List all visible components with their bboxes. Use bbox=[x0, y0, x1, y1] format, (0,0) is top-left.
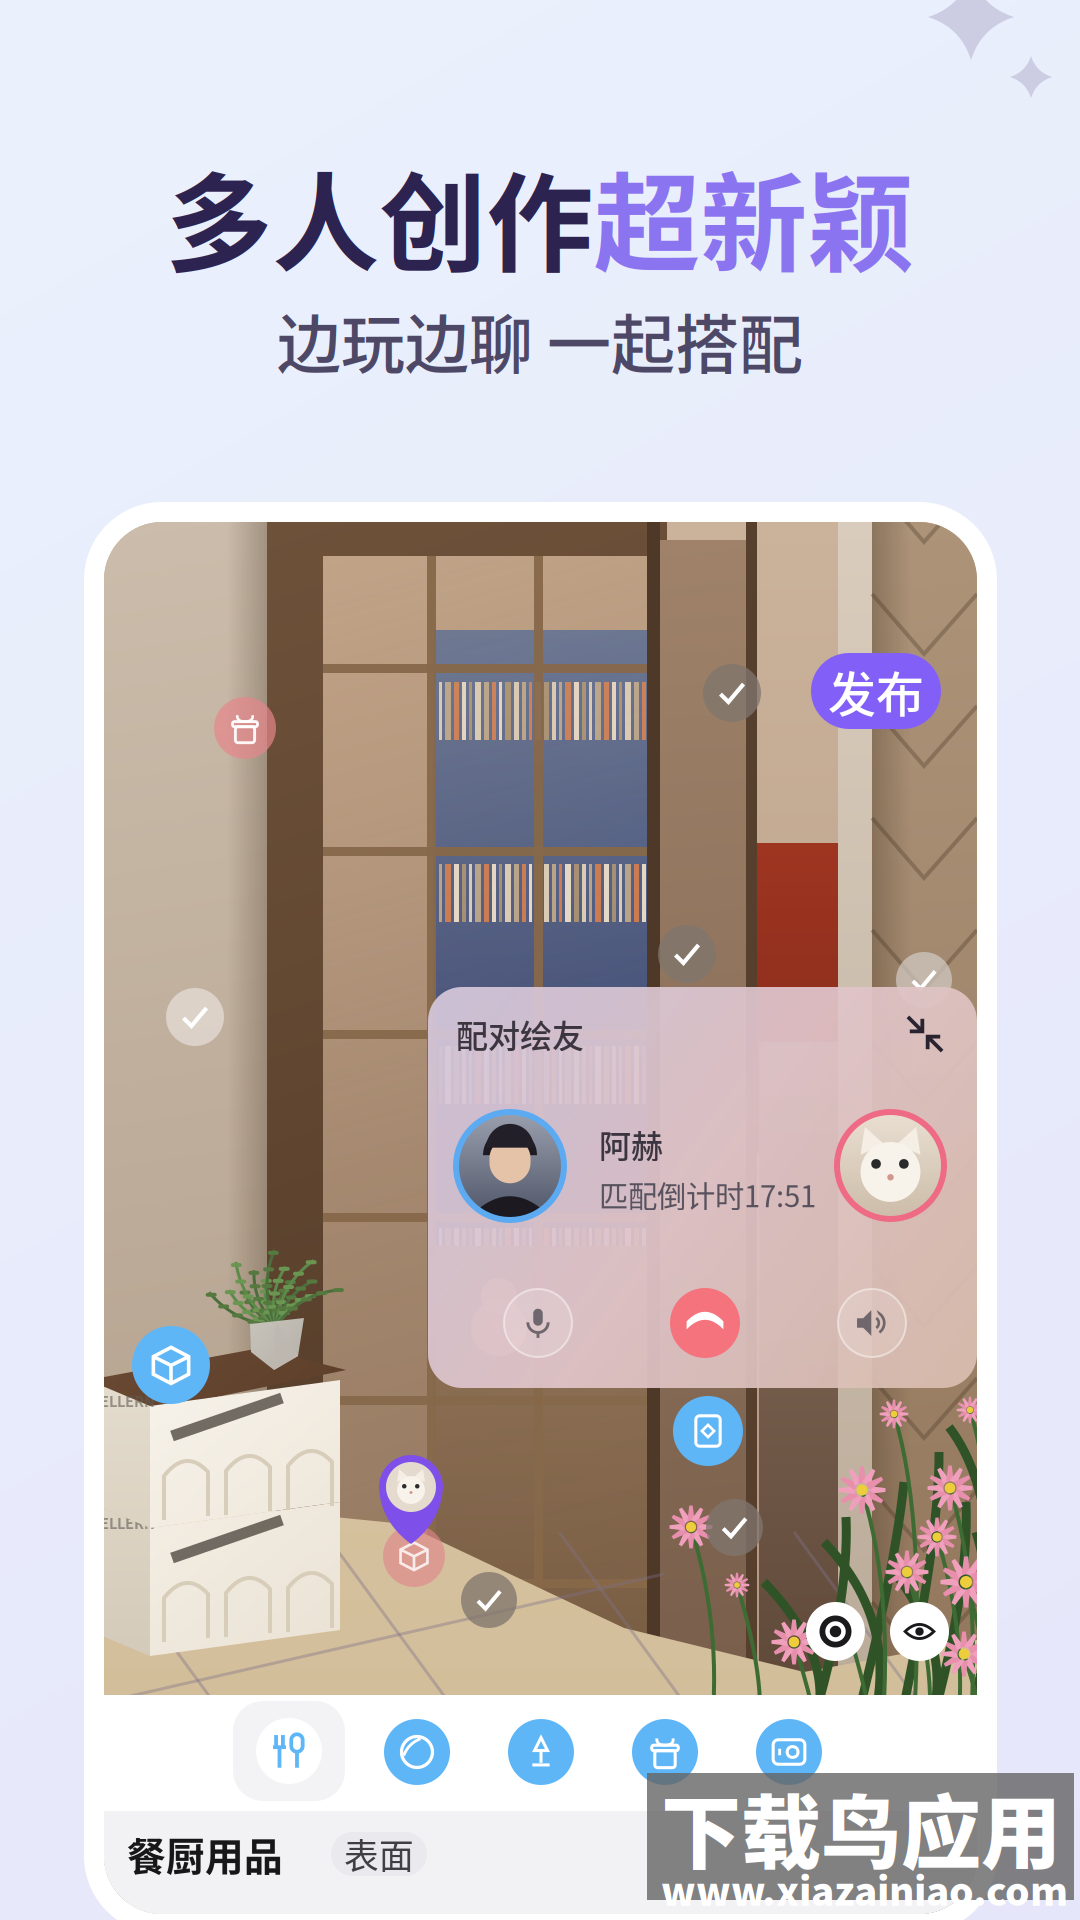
button[interactable]: Furniture bbox=[132, 1326, 210, 1404]
button[interactable]: Placed item bbox=[166, 988, 224, 1046]
button[interactable]: Hidden item bbox=[383, 1525, 445, 1587]
button[interactable]: Placed item bbox=[896, 952, 952, 1008]
staticText: www.xiazainiao.com bbox=[661, 1861, 1068, 1917]
button[interactable]: Category bbox=[753, 1716, 825, 1788]
button[interactable]: Recenter bbox=[806, 1602, 865, 1661]
button[interactable]: Placed item bbox=[461, 1572, 517, 1628]
button[interactable]: Placed item bbox=[703, 664, 761, 722]
staticText: 超新颖 bbox=[593, 139, 914, 293]
staticText: 餐厨用品 bbox=[127, 1826, 283, 1882]
staticText: PELLERN bbox=[90, 1390, 155, 1411]
staticText: 阿赫 bbox=[599, 1121, 663, 1167]
button[interactable]: Speaker bbox=[838, 1289, 906, 1357]
button[interactable]: Rug bbox=[673, 1396, 743, 1466]
staticText: 下载鸟应用 bbox=[661, 1769, 1061, 1885]
staticText: 边玩边聊 一起搭配 bbox=[277, 293, 803, 386]
button[interactable]: 表面 bbox=[331, 1832, 427, 1876]
button[interactable]: End call bbox=[670, 1288, 740, 1358]
button[interactable]: Category bbox=[381, 1716, 453, 1788]
button[interactable]: Category bbox=[629, 1716, 701, 1788]
button[interactable]: Category bbox=[505, 1716, 577, 1788]
button[interactable]: Mute bbox=[504, 1289, 572, 1357]
staticText: 多人创作 bbox=[165, 139, 593, 293]
staticText: 匹配倒计时17:51 bbox=[599, 1173, 816, 1216]
button[interactable]: Gift item bbox=[214, 697, 276, 759]
button[interactable]: Placed item bbox=[706, 1499, 763, 1556]
staticText: PELLERN bbox=[90, 1512, 155, 1533]
button[interactable]: Placed item bbox=[658, 925, 716, 983]
button[interactable]: 发布 bbox=[811, 653, 941, 729]
staticText: 配对绘友 bbox=[456, 1011, 584, 1057]
button[interactable]: Preview bbox=[890, 1602, 949, 1661]
button[interactable]: Kitchenware category bbox=[233, 1701, 345, 1801]
staticText: 表面 bbox=[344, 1829, 414, 1879]
button[interactable]: Collapse bbox=[906, 1015, 944, 1053]
staticText: 发布 bbox=[828, 656, 924, 726]
